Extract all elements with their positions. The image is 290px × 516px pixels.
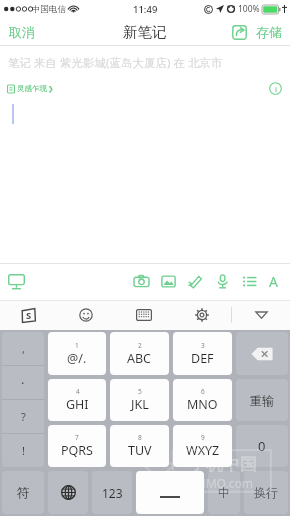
button[interactable]: Share [227, 25, 252, 40]
staticText: 重输 [250, 393, 274, 408]
staticText: DEF [191, 350, 214, 367]
staticText: 手机中国 [189, 454, 257, 475]
staticText: 中 [218, 485, 230, 500]
staticText: 6 [201, 387, 205, 396]
button[interactable]: Info [269, 82, 282, 95]
staticText: 笔记 来自 紫光影城(蓝岛大厦店) 在 北京市 [8, 55, 223, 71]
button[interactable]: 2 [110, 332, 169, 375]
staticText: 4 [76, 387, 80, 396]
staticText: A [269, 272, 278, 291]
staticText: 123 [102, 485, 123, 501]
staticText: 中国电信 [32, 4, 66, 15]
staticText: @/. [67, 350, 87, 367]
button[interactable]: Emoji [57, 300, 115, 330]
staticText: JKL [131, 396, 149, 413]
staticText: 符 [17, 485, 30, 501]
staticText: , [22, 341, 25, 356]
button[interactable]: Space [136, 471, 204, 514]
button[interactable]: 4 [48, 379, 106, 421]
staticText: ❯ [48, 85, 54, 93]
button[interactable]: 灵感乍现 [7, 81, 54, 96]
button[interactable]: , [2, 332, 44, 467]
other: Space [160, 487, 180, 498]
staticText: 新笔记 [123, 23, 167, 41]
button[interactable]: 取消 [0, 24, 44, 40]
button[interactable]: Switch language [48, 471, 88, 514]
staticText: ? [21, 409, 26, 424]
staticText: 100% [238, 3, 260, 15]
staticText: 7 [75, 433, 79, 442]
button[interactable]: 中 [208, 471, 240, 514]
staticText: · [21, 374, 25, 392]
button[interactable]: Keyboard panel [0, 274, 33, 290]
staticText: 2 [138, 341, 142, 350]
staticText: 9 [201, 433, 205, 442]
staticText: i [275, 84, 277, 94]
button[interactable]: 0 [236, 425, 288, 467]
staticText: CNMO.com [189, 475, 253, 491]
staticText: 5 [138, 387, 142, 396]
button[interactable]: 5 [110, 379, 169, 421]
button[interactable]: Draw [182, 274, 209, 289]
button[interactable]: 123 [92, 471, 132, 514]
button[interactable]: Text format [263, 272, 284, 291]
button[interactable]: Backspace [236, 332, 288, 375]
staticText: ABC [127, 350, 152, 367]
button[interactable]: 符 [2, 471, 44, 514]
staticText: 取消 [9, 24, 35, 40]
staticText: MNO [187, 396, 218, 413]
button[interactable]: Sogou [0, 300, 57, 330]
button[interactable]: Voice [209, 274, 236, 289]
staticText: 3 [201, 341, 205, 350]
button[interactable]: 换行 [244, 471, 288, 514]
button[interactable]: Camera [128, 274, 155, 289]
button[interactable]: 7 [48, 425, 106, 467]
staticText: PQRS [61, 442, 93, 459]
staticText: WXYZ [186, 442, 220, 459]
staticText: 0 [258, 437, 266, 455]
button[interactable]: Hide keyboard [232, 300, 290, 330]
staticText: 1 [75, 341, 79, 350]
staticText: 换行 [254, 485, 278, 500]
other: Switch language [61, 485, 76, 500]
staticText: 8 [138, 433, 142, 442]
button[interactable]: Keyboard [115, 300, 173, 330]
staticText: S [26, 309, 32, 322]
button[interactable]: 存储 [252, 24, 290, 40]
other: Backspace [251, 347, 273, 361]
button[interactable]: Checklist [236, 274, 263, 289]
staticText: GHI [66, 396, 89, 413]
button[interactable]: Settings [173, 300, 231, 330]
button[interactable]: 3 [173, 332, 232, 375]
button[interactable]: Photo [155, 274, 182, 289]
button[interactable]: 重输 [236, 379, 288, 421]
staticText: TUV [128, 442, 152, 459]
button[interactable]: 9 [173, 425, 232, 467]
button[interactable]: 1 [48, 332, 106, 375]
staticText: 11:49 [133, 3, 158, 16]
staticText: ! [22, 443, 25, 458]
staticText: 灵感乍现 [17, 84, 47, 93]
button[interactable]: 6 [173, 379, 232, 421]
button[interactable]: 8 [110, 425, 169, 467]
staticText: 存储 [256, 24, 282, 40]
